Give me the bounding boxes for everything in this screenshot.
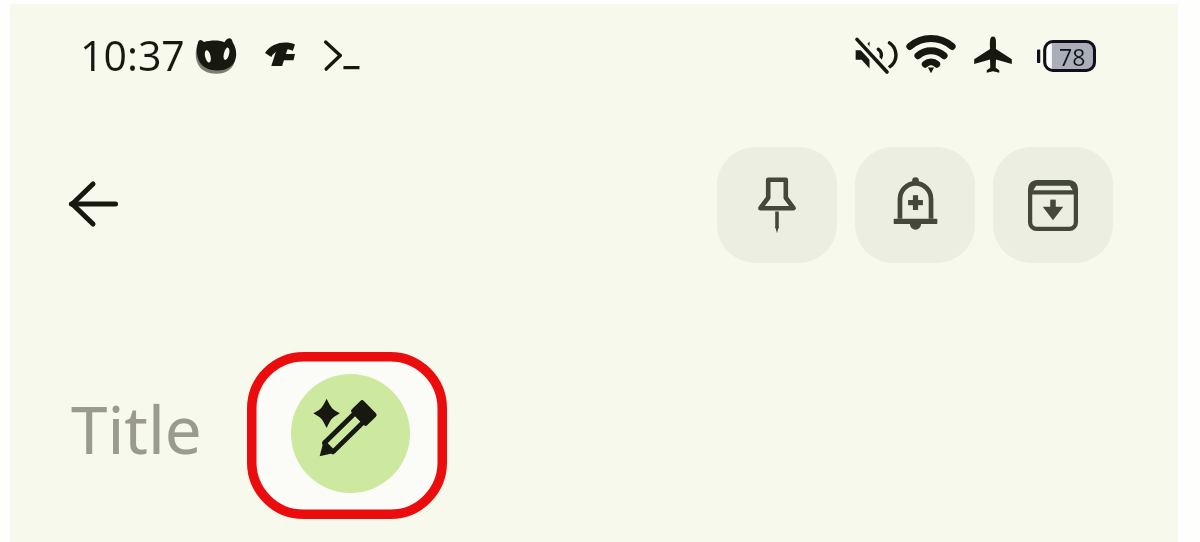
staticText: Title (71, 384, 202, 473)
button[interactable]: Back (56, 167, 130, 241)
button[interactable]: Archive (993, 147, 1113, 263)
button[interactable]: Rewrite title with AI (291, 374, 410, 493)
staticText: 78 (1059, 41, 1086, 72)
button[interactable]: Pin (717, 147, 837, 263)
staticText: 10:37 (80, 27, 185, 83)
button[interactable]: Title (56, 365, 226, 461)
button[interactable]: Add reminder (855, 147, 975, 263)
